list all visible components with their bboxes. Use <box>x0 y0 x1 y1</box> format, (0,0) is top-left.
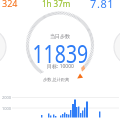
button[interactable]: 1h 37m <box>42 0 71 9</box>
staticText: 步数 总计距离 <box>43 77 70 83</box>
button[interactable]: 324 <box>2 0 18 9</box>
staticText: 当日步数 <box>50 33 70 39</box>
staticText: 1000 <box>2 106 12 111</box>
staticText: 2000 <box>2 95 12 100</box>
button[interactable]: 7.81 <box>90 0 115 11</box>
button[interactable]: 11839 <box>31 39 90 67</box>
staticText: 目标: 10000 <box>47 63 74 70</box>
